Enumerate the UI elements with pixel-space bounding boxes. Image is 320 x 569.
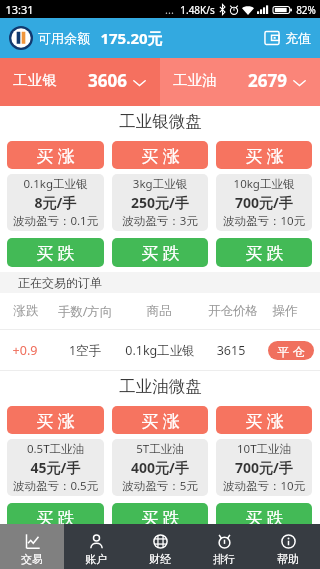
staticText: 财经 xyxy=(149,552,171,566)
staticText: 买 跌 xyxy=(36,241,75,264)
staticText: 买 涨 xyxy=(141,409,180,432)
staticText: 5T工业油 xyxy=(112,441,208,457)
staticText: 正在交易的订单 xyxy=(18,275,102,290)
staticText: 10T工业油 xyxy=(216,441,312,457)
button[interactable]: 买 涨 xyxy=(7,406,104,434)
staticText: 商品 xyxy=(118,303,200,319)
staticText: 波动盈亏：10元 xyxy=(216,213,312,229)
staticText: 工业油 xyxy=(173,71,217,89)
button[interactable]: 买 跌 xyxy=(112,238,208,267)
staticText: 250元/手 xyxy=(112,193,208,212)
staticText: 账户 xyxy=(85,552,107,566)
staticText: 平 仓 xyxy=(277,343,305,359)
button[interactable]: 买 涨 xyxy=(112,141,208,169)
button[interactable]: 充值 xyxy=(252,18,320,58)
button[interactable]: 工业油 xyxy=(160,58,320,106)
staticText: 充值 xyxy=(285,30,311,46)
button[interactable]: 买 涨 xyxy=(216,406,312,434)
staticText: 帮助 xyxy=(277,552,299,566)
staticText: 排行 xyxy=(213,552,235,566)
button[interactable]: 买 跌 xyxy=(7,503,104,532)
staticText: 45元/手 xyxy=(7,458,104,477)
staticText: 1空手 xyxy=(50,342,120,359)
staticText: 8元/手 xyxy=(7,193,104,212)
staticText: 涨跌 xyxy=(0,303,52,319)
staticText: 买 涨 xyxy=(245,409,284,432)
button[interactable]: 买 跌 xyxy=(7,238,104,267)
staticText: 操作 xyxy=(266,303,304,319)
button[interactable]: 买 跌 xyxy=(216,503,312,532)
staticText: 3615 xyxy=(200,342,262,359)
staticText: 3606 xyxy=(88,69,127,92)
staticText: 波动盈亏：10元 xyxy=(216,478,312,494)
button[interactable]: 交易 xyxy=(0,524,64,569)
button[interactable]: 财经 xyxy=(128,524,192,569)
staticText: 买 跌 xyxy=(141,506,180,529)
staticText: 工业银 xyxy=(13,71,57,89)
staticText: 0.5T工业油 xyxy=(7,441,104,457)
button[interactable]: 买 跌 xyxy=(112,503,208,532)
staticText: 工业银微盘 xyxy=(119,111,202,132)
staticText: 买 涨 xyxy=(141,144,180,167)
staticText: 波动盈亏：3元 xyxy=(112,213,208,229)
staticText: +0.9 xyxy=(0,342,50,359)
staticText: 700元/手 xyxy=(216,193,312,212)
staticText: 波动盈亏：0.5元 xyxy=(7,478,104,494)
button[interactable]: +0.9 xyxy=(0,330,320,370)
staticText: 买 涨 xyxy=(245,144,284,167)
staticText: 买 跌 xyxy=(36,506,75,529)
button[interactable]: 排行 xyxy=(192,524,256,569)
staticText: 工业油微盘 xyxy=(119,376,202,397)
staticText: 175.20元 xyxy=(100,28,163,48)
button[interactable]: 买 涨 xyxy=(112,406,208,434)
staticText: 买 跌 xyxy=(245,506,284,529)
staticText: 1.48K/s xyxy=(180,3,215,17)
staticText: 400元/手 xyxy=(112,458,208,477)
staticText: 波动盈亏：5元 xyxy=(112,478,208,494)
staticText: 700元/手 xyxy=(216,458,312,477)
staticText: 3kg工业银 xyxy=(112,176,208,192)
staticText: 开仓价格 xyxy=(200,303,266,319)
staticText: 波动盈亏：0.1元 xyxy=(7,213,104,229)
button[interactable]: 买 涨 xyxy=(216,141,312,169)
staticText: 手数/方向 xyxy=(52,303,118,320)
staticText: 82% xyxy=(296,3,316,17)
staticText: 13:31 xyxy=(5,2,34,17)
staticText: 买 跌 xyxy=(141,241,180,264)
button[interactable]: 工业银 xyxy=(0,58,160,106)
button[interactable]: 帮助 xyxy=(256,524,320,569)
staticText: 买 跌 xyxy=(245,241,284,264)
button[interactable]: 账户 xyxy=(64,524,128,569)
button[interactable]: 平 仓 xyxy=(268,341,314,360)
staticText: 交易 xyxy=(21,552,43,566)
button[interactable]: 买 跌 xyxy=(216,238,312,267)
staticText: ... xyxy=(165,2,174,17)
staticText: 0.1kg工业银 xyxy=(120,342,200,359)
staticText: 可用余额 xyxy=(38,30,90,46)
staticText: 买 涨 xyxy=(36,409,75,432)
staticText: 10kg工业银 xyxy=(216,176,312,192)
staticText: 买 涨 xyxy=(36,144,75,167)
button[interactable]: 买 涨 xyxy=(7,141,104,169)
staticText: 0.1kg工业银 xyxy=(7,176,104,192)
staticText: 2679 xyxy=(248,69,287,92)
